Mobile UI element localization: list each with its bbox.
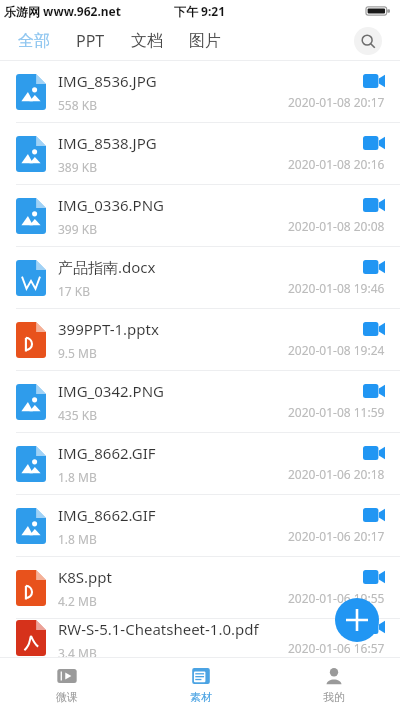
staticText: 399 KB (58, 221, 97, 237)
button[interactable]: 我的 (267, 665, 400, 704)
staticText: IMG_8662.GIF (58, 443, 156, 463)
button[interactable]: K8S.ppt (0, 557, 400, 618)
staticText: 微课 (56, 690, 78, 704)
staticText: K8S.ppt (58, 567, 112, 587)
button[interactable]: 素材 (134, 665, 267, 704)
button[interactable]: IMG_0336.PNG (0, 185, 400, 246)
staticText: 2020-01-06 20:18 (288, 466, 385, 482)
staticText: 图片 (189, 31, 221, 51)
button[interactable]: IMG_0342.PNG (0, 371, 400, 432)
button[interactable]: IMG_8536.JPG (0, 61, 400, 122)
button[interactable]: 产品指南.docx (0, 247, 400, 308)
staticText: 素材 (190, 690, 212, 704)
button[interactable]: IMG_8662.GIF (0, 433, 400, 494)
staticText: 3.4 MB (58, 645, 97, 657)
staticText: IMG_0336.PNG (58, 195, 165, 215)
staticText: 下午 9:21 (174, 3, 226, 19)
staticText: IMG_8536.JPG (58, 71, 157, 91)
staticText: 全部 (18, 31, 50, 51)
button[interactable]: Add (335, 598, 379, 642)
button[interactable]: 全部 (16, 27, 52, 55)
button[interactable]: IMG_8662.GIF (0, 495, 400, 556)
staticText: 2020-01-08 19:46 (288, 280, 385, 296)
staticText: 2020-01-08 19:24 (288, 342, 385, 358)
staticText: 1.8 MB (58, 531, 97, 547)
staticText: 435 KB (58, 407, 97, 423)
button[interactable]: 图片 (187, 27, 223, 55)
staticText: IMG_0342.PNG (58, 381, 165, 401)
staticText: IMG_8538.JPG (58, 133, 157, 153)
button[interactable]: 399PPT-1.pptx (0, 309, 400, 370)
button[interactable]: 文档 (129, 27, 165, 55)
staticText: RW-S-5.1-Cheatsheet-1.0.pdf (58, 619, 259, 639)
button[interactable]: RW-S-5.1-Cheatsheet-1.0.pdf (0, 619, 400, 657)
staticText: IMG_8662.GIF (58, 505, 156, 525)
staticText: 1.8 MB (58, 469, 97, 485)
staticText: 我的 (323, 690, 345, 704)
staticText: 2020-01-08 11:59 (288, 404, 385, 420)
staticText: 2020-01-08 20:17 (288, 94, 385, 110)
button[interactable]: PPT (74, 26, 107, 56)
staticText: 文档 (131, 31, 163, 51)
button[interactable]: 微课 (0, 665, 134, 704)
staticText: 399PPT-1.pptx (58, 319, 159, 339)
staticText: PPT (76, 30, 105, 52)
staticText: 2020-01-06 19:55 (288, 590, 385, 606)
button[interactable]: Search (354, 27, 382, 55)
staticText: 2020-01-06 16:57 (288, 640, 385, 656)
staticText: 2020-01-08 20:16 (288, 156, 385, 172)
staticText: 产品指南.docx (58, 257, 156, 277)
staticText: 4.2 MB (58, 593, 97, 609)
staticText: 9.5 MB (58, 345, 97, 361)
staticText: 558 KB (58, 97, 97, 113)
staticText: 17 KB (58, 283, 91, 299)
button[interactable]: IMG_8538.JPG (0, 123, 400, 184)
staticText: 389 KB (58, 159, 97, 175)
staticText: 2020-01-06 20:17 (288, 528, 385, 544)
staticText: 2020-01-08 20:08 (288, 218, 385, 234)
staticText: 乐游网 www.962.net (4, 3, 121, 19)
